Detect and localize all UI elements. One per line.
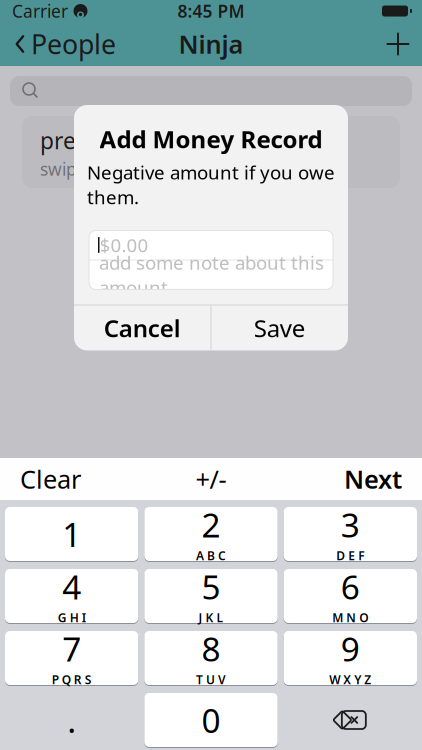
- staticText: Add Money Record: [99, 123, 322, 155]
- button[interactable]: 7: [5, 630, 138, 686]
- staticText: 4: [62, 564, 81, 609]
- button[interactable]: 4: [5, 568, 138, 624]
- staticText: T U V: [196, 672, 226, 688]
- staticText: Ninja: [178, 27, 243, 61]
- button[interactable]: .: [5, 692, 138, 748]
- button[interactable]: Save: [211, 305, 348, 350]
- staticText: A B C: [196, 548, 226, 564]
- button[interactable]: Delete: [284, 692, 417, 748]
- staticText: People: [31, 26, 116, 62]
- staticText: Save: [254, 312, 306, 344]
- staticText: 3: [341, 502, 360, 547]
- staticText: 8: [201, 626, 220, 671]
- button[interactable]: 3: [284, 506, 417, 562]
- staticText: Negative amount if you owe them.: [87, 160, 335, 209]
- staticText: 8:45 PM: [177, 0, 244, 22]
- button[interactable]: Clear: [0, 458, 101, 500]
- staticText: D E F: [336, 548, 364, 564]
- button[interactable]: 1: [5, 506, 138, 562]
- button[interactable]: Cancel: [74, 305, 210, 350]
- staticText: 5: [201, 564, 220, 609]
- staticText: Next: [344, 462, 402, 496]
- staticText: swipe: [40, 157, 87, 180]
- staticText: 6: [341, 564, 360, 609]
- button[interactable]: +/-: [177, 458, 244, 500]
- staticText: Clear: [20, 462, 81, 496]
- button[interactable]: 2: [144, 506, 278, 562]
- staticText: Carrier: [12, 0, 68, 22]
- button[interactable]: 9: [284, 630, 417, 686]
- staticText: 7: [62, 626, 81, 671]
- staticText: +/-: [195, 462, 226, 496]
- staticText: press + to add amount: [40, 125, 282, 155]
- button[interactable]: 0: [144, 692, 278, 748]
- button[interactable]: 5: [144, 568, 278, 624]
- staticText: Cancel: [104, 312, 181, 344]
- button[interactable]: 8: [144, 630, 278, 686]
- staticText: P Q R S: [52, 672, 92, 688]
- staticText: 2: [201, 502, 220, 547]
- button[interactable]: People: [0, 22, 126, 66]
- staticText: 9: [341, 626, 360, 671]
- button[interactable]: 6: [284, 568, 417, 624]
- staticText: W X Y Z: [329, 672, 371, 688]
- staticText: 1: [62, 512, 81, 556]
- staticText: 0: [201, 698, 220, 742]
- staticText: J K L: [198, 610, 223, 626]
- staticText: $0.00: [99, 233, 148, 257]
- button[interactable]: Next: [324, 458, 422, 500]
- staticText: G H I: [58, 610, 86, 626]
- staticText: .: [67, 698, 76, 742]
- staticText: add some note about this amount: [99, 250, 324, 300]
- staticText: M N O: [332, 610, 368, 626]
- button[interactable]: Add: [374, 22, 422, 66]
